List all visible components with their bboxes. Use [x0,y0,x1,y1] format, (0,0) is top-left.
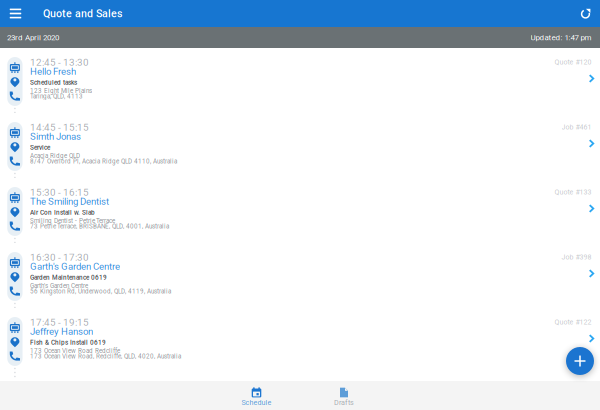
staticText: Drafts [334,398,354,407]
staticText: Garth's Garden Centre [30,261,120,272]
staticText: Taringa, QLD, 4113 [30,93,83,100]
button[interactable]: Refresh [573,0,597,27]
button[interactable]: 15:30 - 16:15 [0,178,600,243]
staticText: Quote #122 [554,318,591,326]
staticText: Air Con Install w. Slab [30,209,95,216]
staticText: 12:45 - 13:30 [30,57,89,68]
staticText: Schedule [241,398,271,407]
staticText: Job #461 [561,123,591,131]
staticText: 8/47 Overlord Pl, Acacia Ridge QLD 4110,… [30,158,177,165]
button[interactable]: 12:45 - 13:30 [0,48,600,113]
staticText: Service [30,144,50,151]
staticText: 123 Eight Mile Plains [30,87,92,94]
button[interactable]: 16:30 - 17:30 [0,243,600,308]
staticText: 23rd April 2020 [7,33,59,42]
button[interactable]: 14:45 - 15:15 [0,113,600,178]
staticText: Jeffrey Hanson [30,326,93,337]
staticText: 173 Ocean View Road Redcliffe [30,347,120,354]
button[interactable]: Schedule [216,381,296,410]
staticText: Scheduled tasks [30,79,77,86]
staticText: 173 Ocean View Road, Redcliffe, QLD, 402… [30,353,181,360]
button[interactable]: Menu [2,0,28,27]
staticText: Simth Jonas [30,131,81,142]
staticText: Job #398 [561,253,591,261]
staticText: 16:30 - 17:30 [30,252,89,263]
staticText: The Smiling Dentist [30,196,109,207]
staticText: Acacia Ridge QLD [30,152,80,159]
staticText: Quote #120 [554,58,591,66]
staticText: Fish & Chips Install 0619 [30,339,106,346]
staticText: Updated: 1:47 pm [530,33,591,42]
button[interactable]: Drafts [304,381,384,410]
staticText: Garth's Garden Centre [30,282,88,289]
staticText: Smiling Dentist - Petrie Terrace [30,217,115,224]
staticText: Quote and Sales [43,7,122,20]
staticText: Garden Maintenance 0619 [30,274,107,281]
staticText: 73 Petrie Terrace, BRISBANE, QLD, 4001, … [30,223,169,230]
staticText: 15:30 - 16:15 [30,187,89,198]
staticText: Hello Fresh [30,66,76,77]
staticText: 56 Kingston Rd, Underwood, QLD, 4119, Au… [30,288,171,295]
button[interactable]: Add [566,347,594,375]
staticText: 17:45 - 19:15 [30,317,89,328]
staticText: Quote #133 [554,188,591,196]
staticText: 14:45 - 15:15 [30,122,89,133]
button[interactable]: 17:45 - 19:15 [0,308,600,373]
